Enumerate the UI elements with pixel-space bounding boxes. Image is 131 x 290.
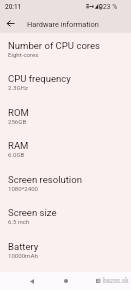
staticText: ROM bbox=[8, 107, 29, 118]
staticText: 256GB bbox=[8, 118, 27, 125]
button[interactable]: RAM bbox=[0, 134, 131, 167]
staticText: 6.5 inch bbox=[8, 218, 30, 225]
staticText: Eight-cores bbox=[8, 51, 39, 58]
staticText: Screen resolution bbox=[8, 174, 82, 185]
button[interactable]: Recent apps bbox=[90, 273, 106, 289]
staticText: RAM bbox=[8, 140, 29, 151]
button[interactable]: Battery bbox=[0, 235, 131, 268]
staticText: Number of CPU cores bbox=[8, 40, 100, 51]
staticText: Battery bbox=[8, 241, 39, 252]
staticText: CPU frequency bbox=[8, 73, 71, 84]
staticText: Hardware information bbox=[27, 20, 99, 29]
button[interactable]: ROM bbox=[0, 101, 131, 134]
button[interactable]: Screen resolution bbox=[0, 168, 131, 201]
button[interactable]: Back bbox=[0, 13, 21, 33]
button[interactable]: Screen size bbox=[0, 201, 131, 234]
button[interactable]: Number of CPU cores bbox=[0, 34, 131, 67]
staticText: 10000mAh bbox=[8, 252, 38, 259]
staticText: 20:11 bbox=[5, 3, 22, 11]
staticText: 23 % bbox=[103, 3, 118, 11]
button[interactable]: CPU frequency bbox=[0, 67, 131, 100]
staticText: 6.0GB bbox=[8, 151, 25, 158]
staticText: 1080*2400 bbox=[8, 185, 39, 192]
button[interactable]: Back bbox=[24, 273, 40, 289]
staticText: 2.3GHz bbox=[8, 84, 28, 91]
staticText: Screen size bbox=[8, 207, 57, 218]
button[interactable]: Home bbox=[58, 273, 74, 289]
staticText: bazos.sk bbox=[103, 277, 129, 285]
